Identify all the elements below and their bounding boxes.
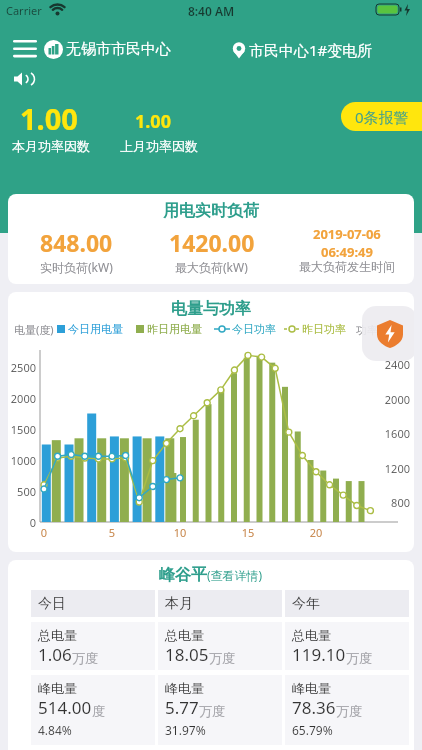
staticText: 万度 — [199, 703, 225, 719]
staticText: 10 — [172, 525, 188, 540]
staticText: 万度 — [346, 650, 372, 666]
staticText: 1.00 — [20, 99, 78, 138]
staticText: 06:49:49 — [321, 243, 373, 259]
staticText: 度 — [92, 703, 105, 719]
staticText: 5 — [104, 525, 120, 540]
staticText: 848.00 — [40, 227, 113, 258]
staticText: 2500 — [8, 360, 36, 375]
staticText: 1000 — [8, 453, 36, 468]
button[interactable]: 市民中心1#变电所 — [232, 40, 373, 60]
staticText: 2000 — [382, 392, 410, 407]
staticText: 峰电量 — [38, 680, 77, 696]
staticText: 最大负荷发生时间 — [299, 259, 395, 274]
staticText: 2400 — [382, 357, 410, 372]
staticText: 1600 — [382, 426, 410, 441]
staticText: 万度 — [72, 650, 98, 666]
staticText: 万度 — [209, 650, 235, 666]
staticText: 电量(度) — [14, 322, 54, 337]
staticText: 今日用电量 — [68, 322, 123, 336]
staticText: 119.10 — [292, 643, 346, 666]
staticText: 0 — [36, 525, 52, 540]
staticText: 31.97% — [165, 722, 206, 738]
staticText: 1.06 — [38, 643, 72, 666]
staticText: 65.79% — [292, 722, 333, 738]
staticText: 1200 — [382, 461, 410, 476]
staticText: 今日功率 — [232, 322, 276, 336]
staticText: 峰谷平 — [159, 565, 207, 585]
staticText: 上月功率因数 — [120, 138, 198, 154]
staticText: 总电量 — [292, 627, 331, 643]
staticText: 78.36 — [292, 696, 336, 719]
staticText: 20 — [308, 525, 324, 540]
staticText: 无锡市市民中心 — [66, 40, 171, 59]
button[interactable] — [14, 72, 30, 86]
staticText: 峰电量 — [292, 680, 331, 696]
staticText: 昨日用电量 — [147, 322, 202, 336]
staticText: 18.05 — [165, 643, 209, 666]
staticText: 功率(度) — [356, 322, 396, 337]
button[interactable] — [362, 306, 414, 361]
staticText: 市民中心1#变电所 — [249, 40, 373, 60]
staticText: 今年 — [292, 595, 320, 613]
staticText: 1420.00 — [169, 227, 255, 258]
staticText: 800 — [382, 495, 410, 510]
staticText: 0 — [8, 515, 36, 530]
button[interactable] — [13, 40, 37, 57]
staticText: 本月 — [165, 595, 193, 613]
staticText: 昨日功率 — [302, 322, 346, 336]
staticText: (查看详情) — [207, 567, 263, 583]
staticText: 电量与功率 — [8, 299, 414, 319]
staticText: 1500 — [8, 422, 36, 437]
button[interactable]: 0条报警 — [341, 102, 422, 131]
staticText: 5.77 — [165, 696, 199, 719]
staticText: 总电量 — [165, 627, 204, 643]
staticText: 峰电量 — [165, 680, 204, 696]
staticText: 500 — [8, 484, 36, 499]
staticText: 514.00 — [38, 696, 92, 719]
staticText: 1.00 — [135, 109, 171, 134]
staticText: 实时负荷(kW) — [40, 259, 113, 275]
staticText: 用电实时负荷 — [8, 201, 414, 221]
staticText: 0条报警 — [355, 107, 409, 127]
staticText: 8:40 AM — [0, 3, 422, 19]
staticText: 万度 — [336, 703, 362, 719]
staticText: 最大负荷(kW) — [175, 259, 248, 275]
staticText: 15 — [240, 525, 256, 540]
staticText: 今日 — [38, 595, 66, 613]
staticText: Carrier — [6, 3, 42, 18]
staticText: 4.84% — [38, 722, 72, 738]
staticText: 2000 — [8, 391, 36, 406]
staticText: 总电量 — [38, 627, 77, 643]
staticText: 2019-07-06 — [313, 225, 381, 243]
button[interactable]: 无锡市市民中心 — [44, 40, 171, 59]
button[interactable]: 峰谷平 — [8, 565, 414, 585]
staticText: 本月功率因数 — [12, 138, 90, 154]
